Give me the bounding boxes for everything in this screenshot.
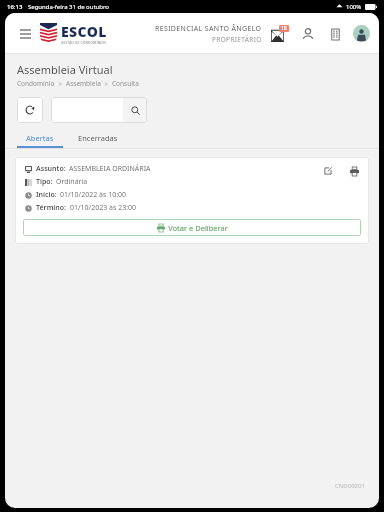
staticText: Segunda-feira 31 de outubro (28, 3, 110, 11)
staticText: Início: (36, 190, 57, 200)
staticText: Condomínio (17, 79, 55, 88)
button[interactable]: Avatar do usuário (353, 25, 370, 42)
button[interactable]: Menu (17, 26, 33, 42)
staticText: PROPRIETÁRIO (212, 35, 262, 44)
staticText: Término: (36, 203, 67, 213)
staticText: RESIDENCIAL SANTO ÂNGELO (155, 24, 262, 34)
staticText: GESTÃO DE CONDOMÍNIOS (61, 41, 107, 45)
staticText: » (101, 79, 112, 88)
button[interactable] (51, 97, 123, 123)
staticText: Assembleia (66, 79, 101, 88)
staticText: ESCOL (61, 22, 107, 41)
button[interactable]: Abrir (321, 164, 335, 178)
staticText: 18 (281, 25, 287, 32)
staticText: 100% (346, 3, 362, 11)
button[interactable]: Votar e Deliberar (23, 219, 361, 236)
staticText: 01/10/2022 às 10:00 (60, 190, 127, 200)
staticText: CND00201 (335, 482, 365, 490)
staticText: Votar e Deliberar (168, 223, 228, 233)
button[interactable]: Encerradas (73, 130, 123, 146)
staticText: Assembleia Virtual (17, 62, 113, 77)
button[interactable]: Perfil (300, 26, 316, 42)
button[interactable]: Imprimir (347, 164, 361, 178)
staticText: ASSEMBLEIA ORDINÁRIA (69, 164, 151, 174)
staticText: » (55, 79, 66, 88)
button[interactable]: Atualizar (17, 97, 43, 123)
staticText: Encerradas (78, 133, 118, 143)
button[interactable]: Condomínio (327, 26, 343, 42)
button[interactable]: Assunto: (15, 157, 369, 244)
staticText: Ordinária (56, 177, 88, 187)
button[interactable]: Mensagens (271, 25, 289, 43)
staticText: Tipo: (36, 177, 53, 187)
button[interactable]: Pesquisar (123, 97, 147, 123)
staticText: 01/10/2023 às 23:00 (70, 203, 137, 213)
staticText: Abertas (26, 133, 54, 143)
staticText: 16:13 (7, 3, 23, 11)
button[interactable]: Abertas (21, 130, 59, 146)
staticText: Assunto: (36, 164, 66, 174)
staticText: Consulta (112, 79, 139, 88)
